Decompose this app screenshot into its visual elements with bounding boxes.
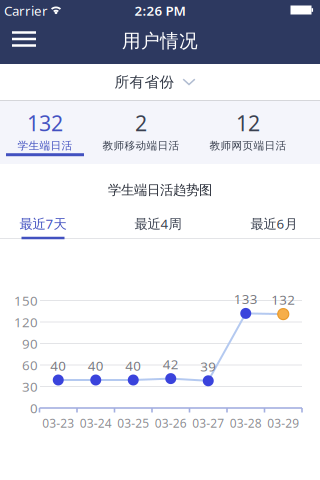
staticText: 最近6月 [250,215,297,232]
staticText: 30 [22,378,38,395]
button[interactable]: 最近4周 [134,215,181,232]
staticText: 133 [234,290,258,308]
button[interactable]: 132 [6,101,84,164]
staticText: 03-23 [42,415,74,431]
staticText: 用户情况 [122,29,198,52]
staticText: 40 [50,357,66,374]
staticText: 120 [14,313,38,331]
staticText: 12 [236,109,260,137]
staticText: 03-24 [80,415,112,431]
staticText: 42 [163,355,179,373]
button[interactable]: 2 [102,101,179,164]
staticText: 132 [271,291,295,308]
staticText: 60 [22,356,38,374]
staticText: 学生端日活 [17,139,72,152]
staticText: 0 [30,399,38,417]
staticText: 03-26 [155,415,187,431]
staticText: 39 [200,357,216,375]
staticText: 所有省份 [114,73,174,91]
staticText: Carrier [4,2,48,19]
staticText: 2 [135,109,147,137]
button[interactable]: 所有省份 [0,64,320,100]
staticText: 最近7天 [19,215,66,232]
staticText: 40 [88,357,104,374]
staticText: 132 [27,109,63,137]
staticText: 教师移动端日活 [102,139,179,152]
staticText: 03-28 [230,415,262,431]
staticText: 03-25 [117,415,149,431]
button[interactable]: 最近7天 [19,215,66,232]
staticText: 150 [14,292,38,309]
staticText: 2:26 PM [134,2,185,19]
staticText: 40 [125,357,141,374]
staticText: 教师网页端日活 [209,139,286,152]
staticText: 03-27 [192,415,224,431]
staticText: 最近4周 [134,215,181,232]
button[interactable] [12,31,36,47]
staticText: 90 [22,335,38,352]
staticText: 学生端日活趋势图 [108,182,212,198]
staticText: 03-29 [267,415,299,431]
button[interactable]: 最近6月 [250,215,297,232]
button[interactable]: 12 [209,101,286,164]
